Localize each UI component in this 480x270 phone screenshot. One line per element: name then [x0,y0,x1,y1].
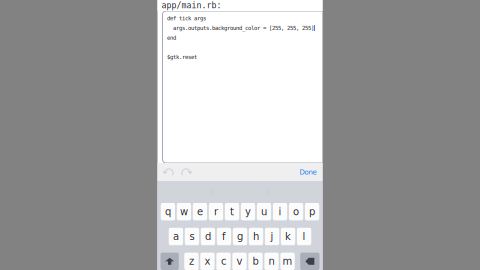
staticText: e [197,206,203,217]
staticText: u [261,206,267,217]
button[interactable]: h [249,228,263,245]
button[interactable]: p [305,203,319,220]
staticText: n [268,255,274,267]
button[interactable]: y [241,203,255,220]
button[interactable]: l [297,228,311,245]
button[interactable]: x [200,253,215,270]
button[interactable]: m [280,253,295,270]
staticText: Done [299,168,316,176]
staticText: p [309,206,315,217]
button[interactable]: g [233,228,247,245]
staticText: q [165,206,171,217]
staticText: m [283,255,293,267]
staticText: s [189,231,194,242]
button[interactable]: i [273,203,287,220]
staticText: g [237,231,243,242]
button[interactable]: Done [296,164,319,180]
button[interactable]: d [201,228,215,245]
button[interactable]: n [264,253,279,270]
staticText: y [245,206,251,217]
staticText: v [236,255,242,267]
button[interactable]: e [193,203,207,220]
button[interactable]: o [289,203,303,220]
staticText: b [252,255,258,267]
staticText: k [285,231,291,242]
button[interactable]: a [169,228,183,245]
button[interactable]: q [161,203,175,220]
button[interactable]: k [281,228,295,245]
staticText: z [189,255,194,267]
staticText: i [278,206,281,217]
staticText: j [270,231,273,242]
button[interactable]: u [257,203,271,220]
button[interactable]: z [184,253,199,270]
button[interactable]: v [232,253,247,270]
button[interactable]: w [177,203,191,220]
button[interactable]: t [225,203,239,220]
button[interactable]: s [185,228,199,245]
staticText: x [204,255,210,267]
staticText: r [214,206,218,217]
button[interactable]: j [265,228,279,245]
button[interactable]: c [216,253,231,270]
staticText: args.outputs.background_color = [255, 25… [167,25,314,31]
staticText: end [167,34,176,41]
staticText: c [221,255,226,267]
staticText: $gtk.reset [167,54,197,60]
staticText: h [253,231,259,242]
button[interactable]: Redo [177,163,194,180]
staticText: a [173,231,179,242]
button[interactable]: Undo [160,163,177,180]
button[interactable]: Delete [300,253,319,270]
staticText: w [180,206,188,217]
staticText: l [303,231,306,242]
staticText: app/main.rb: [161,1,221,10]
staticText: t [230,206,234,217]
button[interactable]: b [248,253,263,270]
staticText: def tick args [167,15,206,21]
staticText: o [293,206,299,217]
staticText: f [222,231,226,242]
button[interactable]: Shift [160,253,179,270]
staticText: d [205,231,211,242]
button[interactable]: f [217,228,231,245]
button[interactable]: r [209,203,223,220]
